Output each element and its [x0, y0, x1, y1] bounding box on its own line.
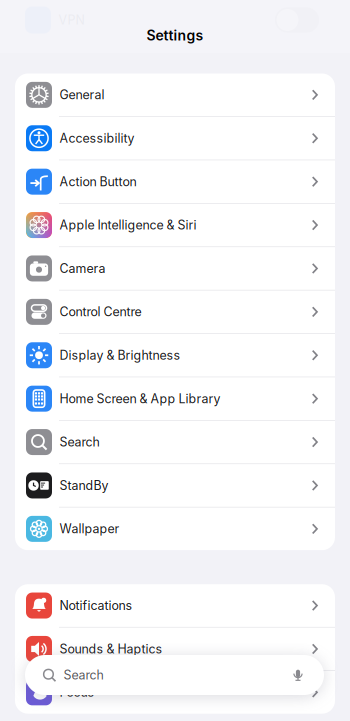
button[interactable]: Wallpaper — [15, 507, 335, 550]
button[interactable]: StandBy — [15, 464, 335, 507]
button[interactable]: Sounds & Haptics — [15, 628, 335, 670]
button[interactable]: Camera — [15, 247, 335, 290]
button[interactable]: Focus — [15, 671, 335, 714]
button[interactable]: Accessibility — [15, 117, 335, 160]
button[interactable]: Notifications — [15, 584, 335, 627]
staticText: Search — [59, 434, 99, 449]
button[interactable]: Apple Intelligence & Siri — [15, 204, 335, 246]
button[interactable]: General — [15, 73, 335, 116]
staticText: Apple Intelligence & Siri — [59, 217, 196, 232]
staticText: Notifications — [59, 598, 132, 613]
button[interactable]: Display & Brightness — [15, 334, 335, 377]
staticText: Action Button — [59, 174, 136, 189]
button[interactable]: Action Button — [15, 160, 335, 203]
button[interactable]: Control Centre — [15, 290, 335, 333]
button[interactable]: Search — [25, 655, 324, 695]
staticText: General — [59, 87, 104, 102]
staticText: Camera — [59, 261, 105, 276]
staticText: VPN — [58, 12, 84, 27]
staticText: Home Screen & App Library — [59, 391, 220, 406]
staticText: StandBy — [59, 478, 108, 493]
staticText: Search — [63, 667, 103, 682]
staticText: Focus — [59, 685, 94, 700]
staticText: Control Centre — [59, 304, 141, 319]
staticText: Accessibility — [59, 131, 134, 146]
button[interactable]: Search — [15, 421, 335, 463]
staticText: Settings — [146, 27, 203, 44]
button[interactable]: Home Screen & App Library — [15, 377, 335, 420]
staticText: Display & Brightness — [59, 348, 180, 363]
staticText: Sounds & Haptics — [59, 641, 162, 656]
staticText: Wallpaper — [59, 521, 119, 536]
